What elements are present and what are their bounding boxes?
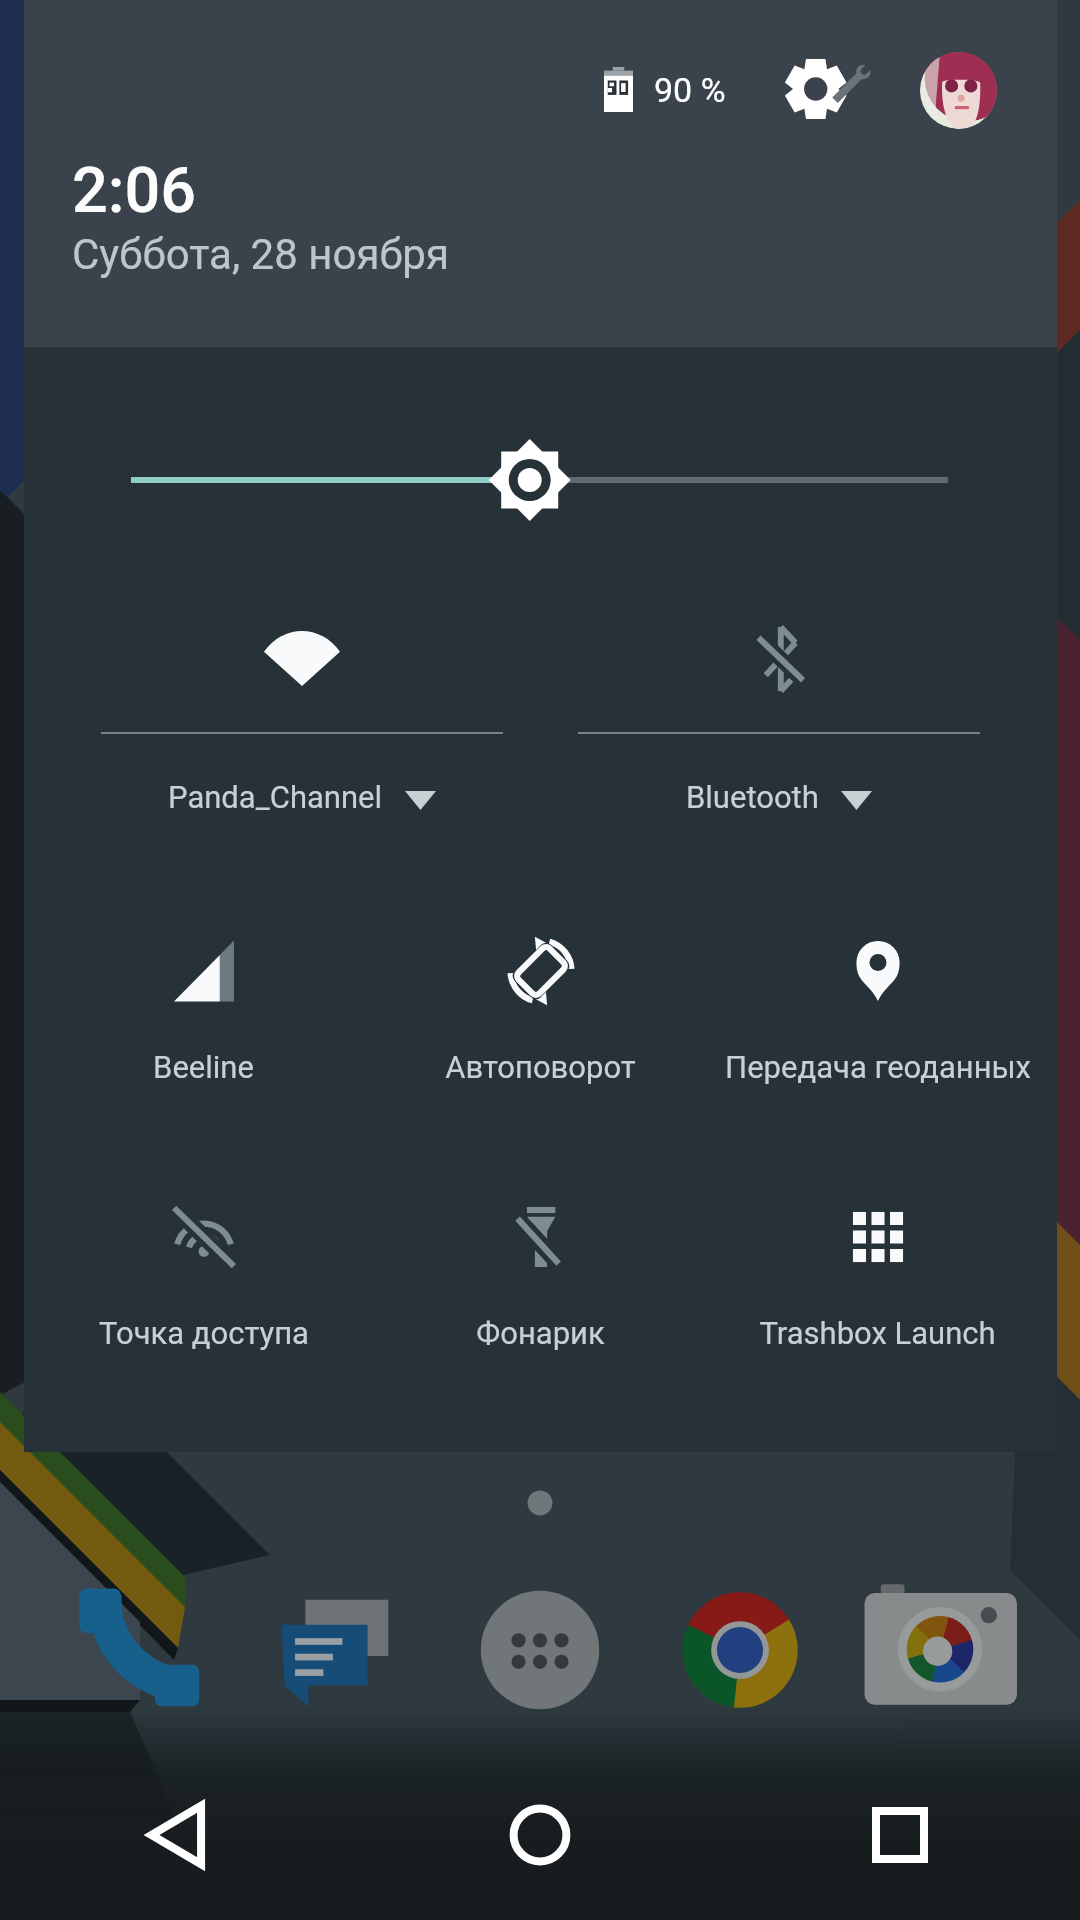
button[interactable]: Автоповорот bbox=[372, 872, 709, 1122]
button[interactable]: Bluetooth bbox=[540, 559, 1018, 849]
button[interactable]: Panda_Channel bbox=[63, 559, 540, 849]
staticText: Передача геоданных bbox=[725, 1049, 1031, 1085]
button[interactable]: Phone bbox=[50, 1560, 230, 1740]
staticText: Фонарик bbox=[476, 1315, 605, 1351]
button[interactable]: Точка доступа bbox=[35, 1138, 372, 1388]
button[interactable]: Chrome bbox=[650, 1560, 830, 1740]
button[interactable]: Recents bbox=[720, 1705, 1080, 1920]
button[interactable]: Apps bbox=[450, 1560, 630, 1740]
button[interactable]: Trashbox Launch bbox=[709, 1138, 1046, 1388]
staticText: 2:06 bbox=[72, 154, 197, 228]
staticText: Точка доступа bbox=[99, 1315, 309, 1351]
button[interactable]: Messages bbox=[245, 1560, 425, 1740]
staticText: Суббота, 28 ноября bbox=[72, 230, 449, 279]
staticText: Bluetooth bbox=[686, 779, 819, 815]
button[interactable]: Back bbox=[0, 1705, 360, 1920]
button[interactable]: Brightness bbox=[24, 420, 1057, 540]
staticText: Panda_Channel bbox=[168, 779, 383, 815]
staticText: 90 % bbox=[654, 70, 726, 110]
button[interactable]: Home bbox=[360, 1705, 720, 1920]
button[interactable]: Camera bbox=[850, 1560, 1030, 1740]
staticText: Автоповорот bbox=[445, 1049, 636, 1085]
button[interactable]: Фонарик bbox=[372, 1138, 709, 1388]
staticText: Trashbox Launch bbox=[759, 1315, 996, 1351]
button[interactable]: Settings bbox=[766, 39, 906, 139]
button[interactable]: User profile bbox=[920, 52, 997, 129]
staticText: Beeline bbox=[153, 1049, 254, 1085]
button[interactable]: Beeline bbox=[35, 872, 372, 1122]
button[interactable]: Передача геоданных bbox=[709, 872, 1046, 1122]
